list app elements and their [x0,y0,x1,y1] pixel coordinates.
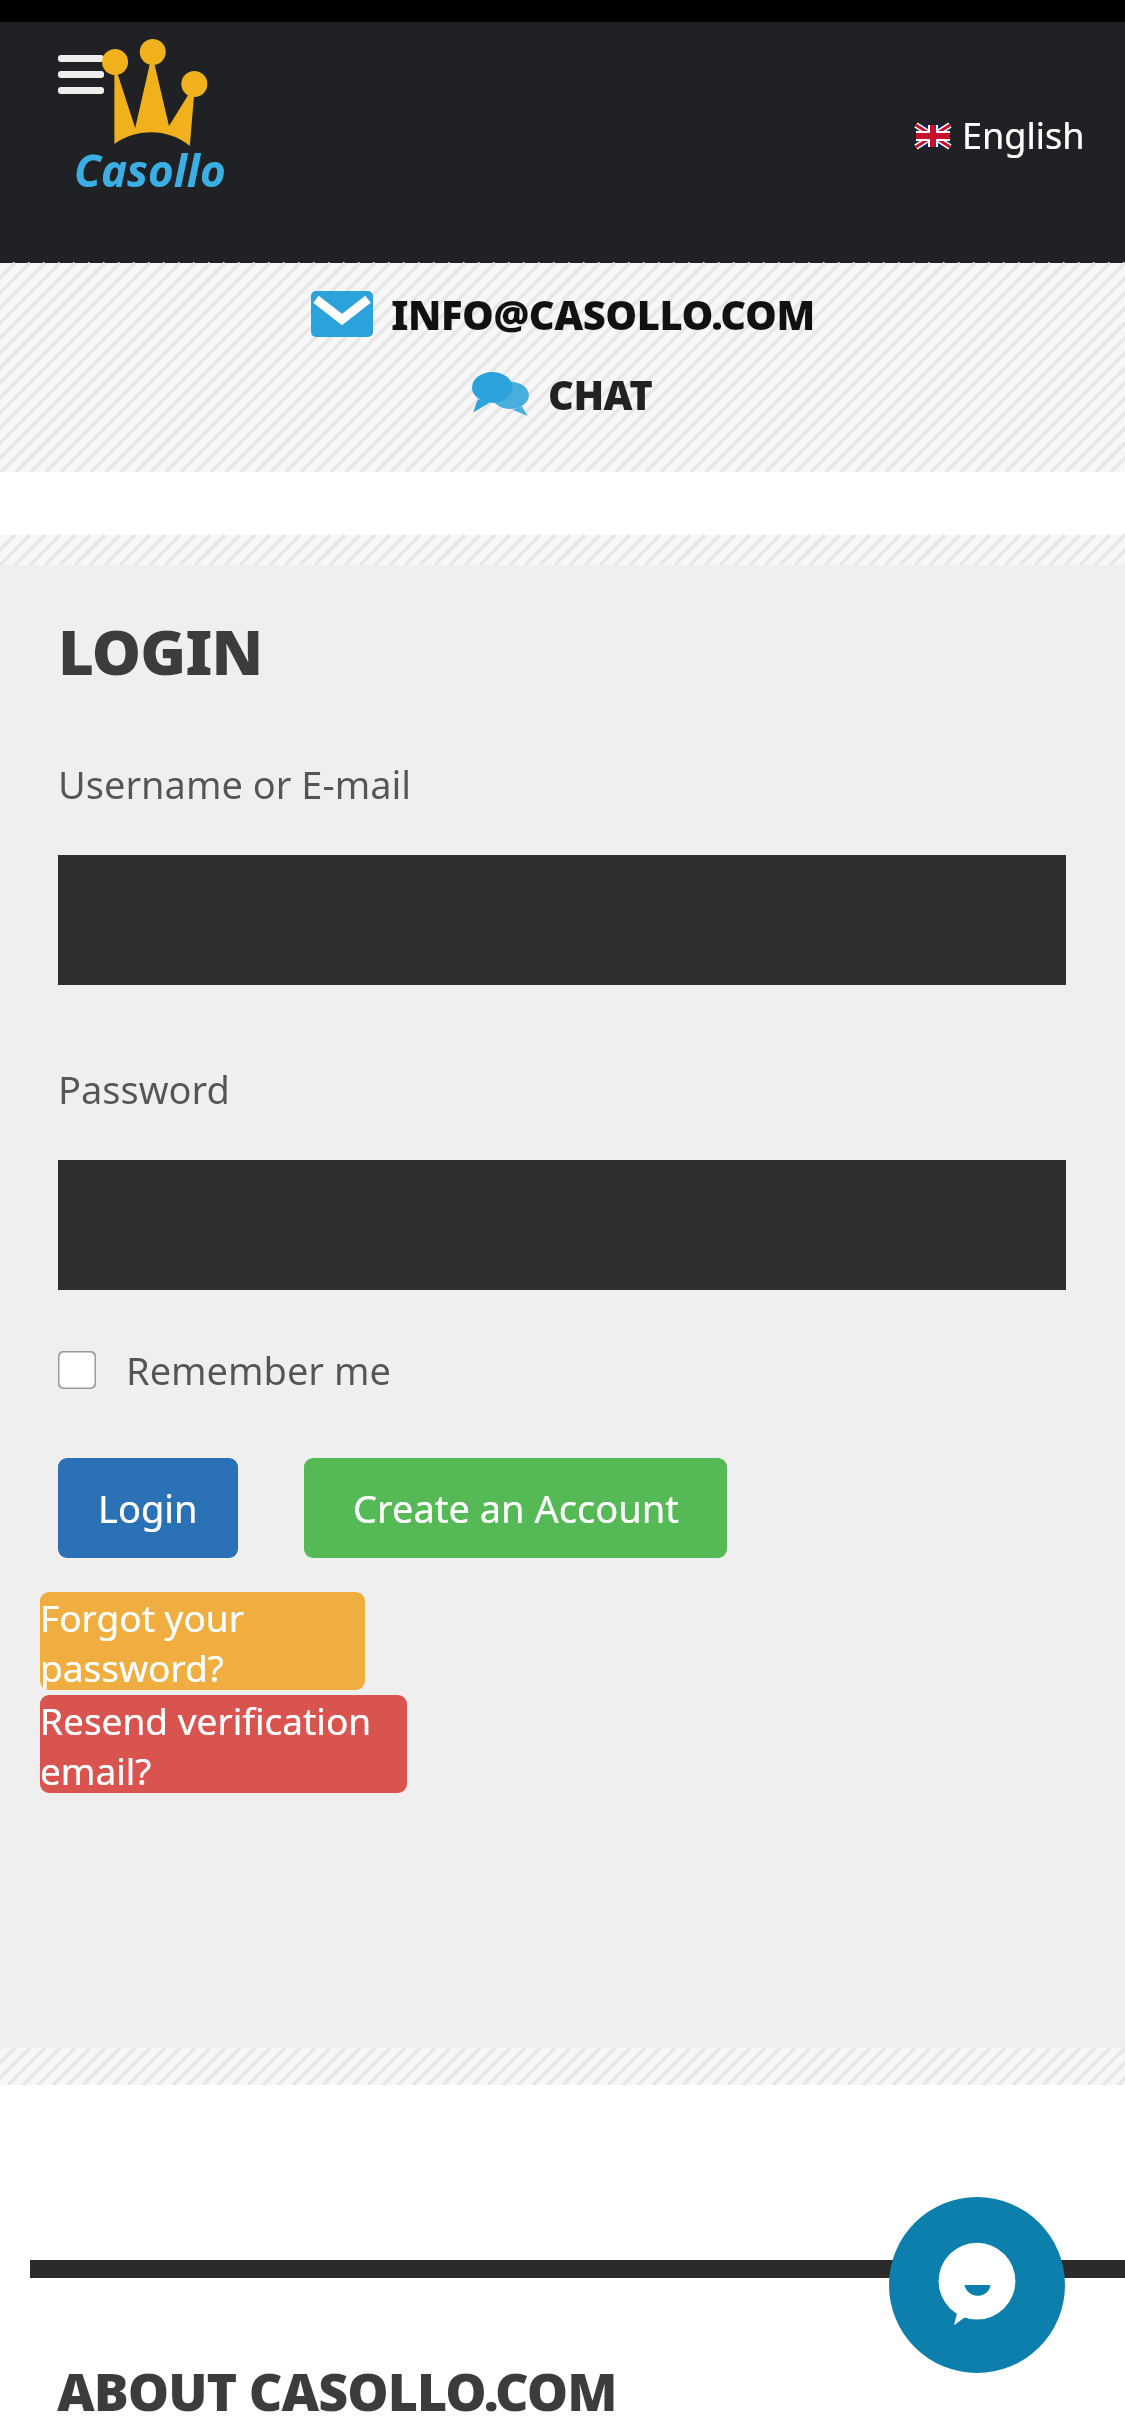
staticText: Remember me [126,1344,391,1396]
staticText: Login [98,1482,198,1534]
staticText: CHAT [548,367,653,421]
staticText: Resend verification email? [40,1695,407,1793]
button[interactable]: Login [58,1458,238,1558]
button[interactable]: Forgot your password? [40,1592,365,1690]
button[interactable]: Create an Account [304,1458,727,1558]
staticText: English [962,111,1085,160]
button[interactable]: Open chat [889,2197,1065,2373]
staticText: INFO@CASOLLO.COM [391,287,815,341]
staticText: Username or E-mail [58,758,412,810]
button[interactable]: English [916,111,1085,160]
button[interactable]: INFO@CASOLLO.COM [311,287,815,341]
staticText: Password [58,1063,230,1115]
staticText: Create an Account [353,1482,679,1534]
button[interactable]: Casollo home [78,22,208,147]
staticText: Forgot your password? [40,1592,365,1690]
button[interactable]: Menu [58,55,104,95]
button[interactable]: CHAT [472,367,653,421]
button[interactable]: Remember me [58,1344,391,1396]
button[interactable]: Resend verification email? [40,1695,407,1793]
staticText: LOGIN [58,609,263,693]
staticText: ABOUT CASOLLO.COM [57,2355,617,2426]
staticText: Casollo [74,140,226,200]
